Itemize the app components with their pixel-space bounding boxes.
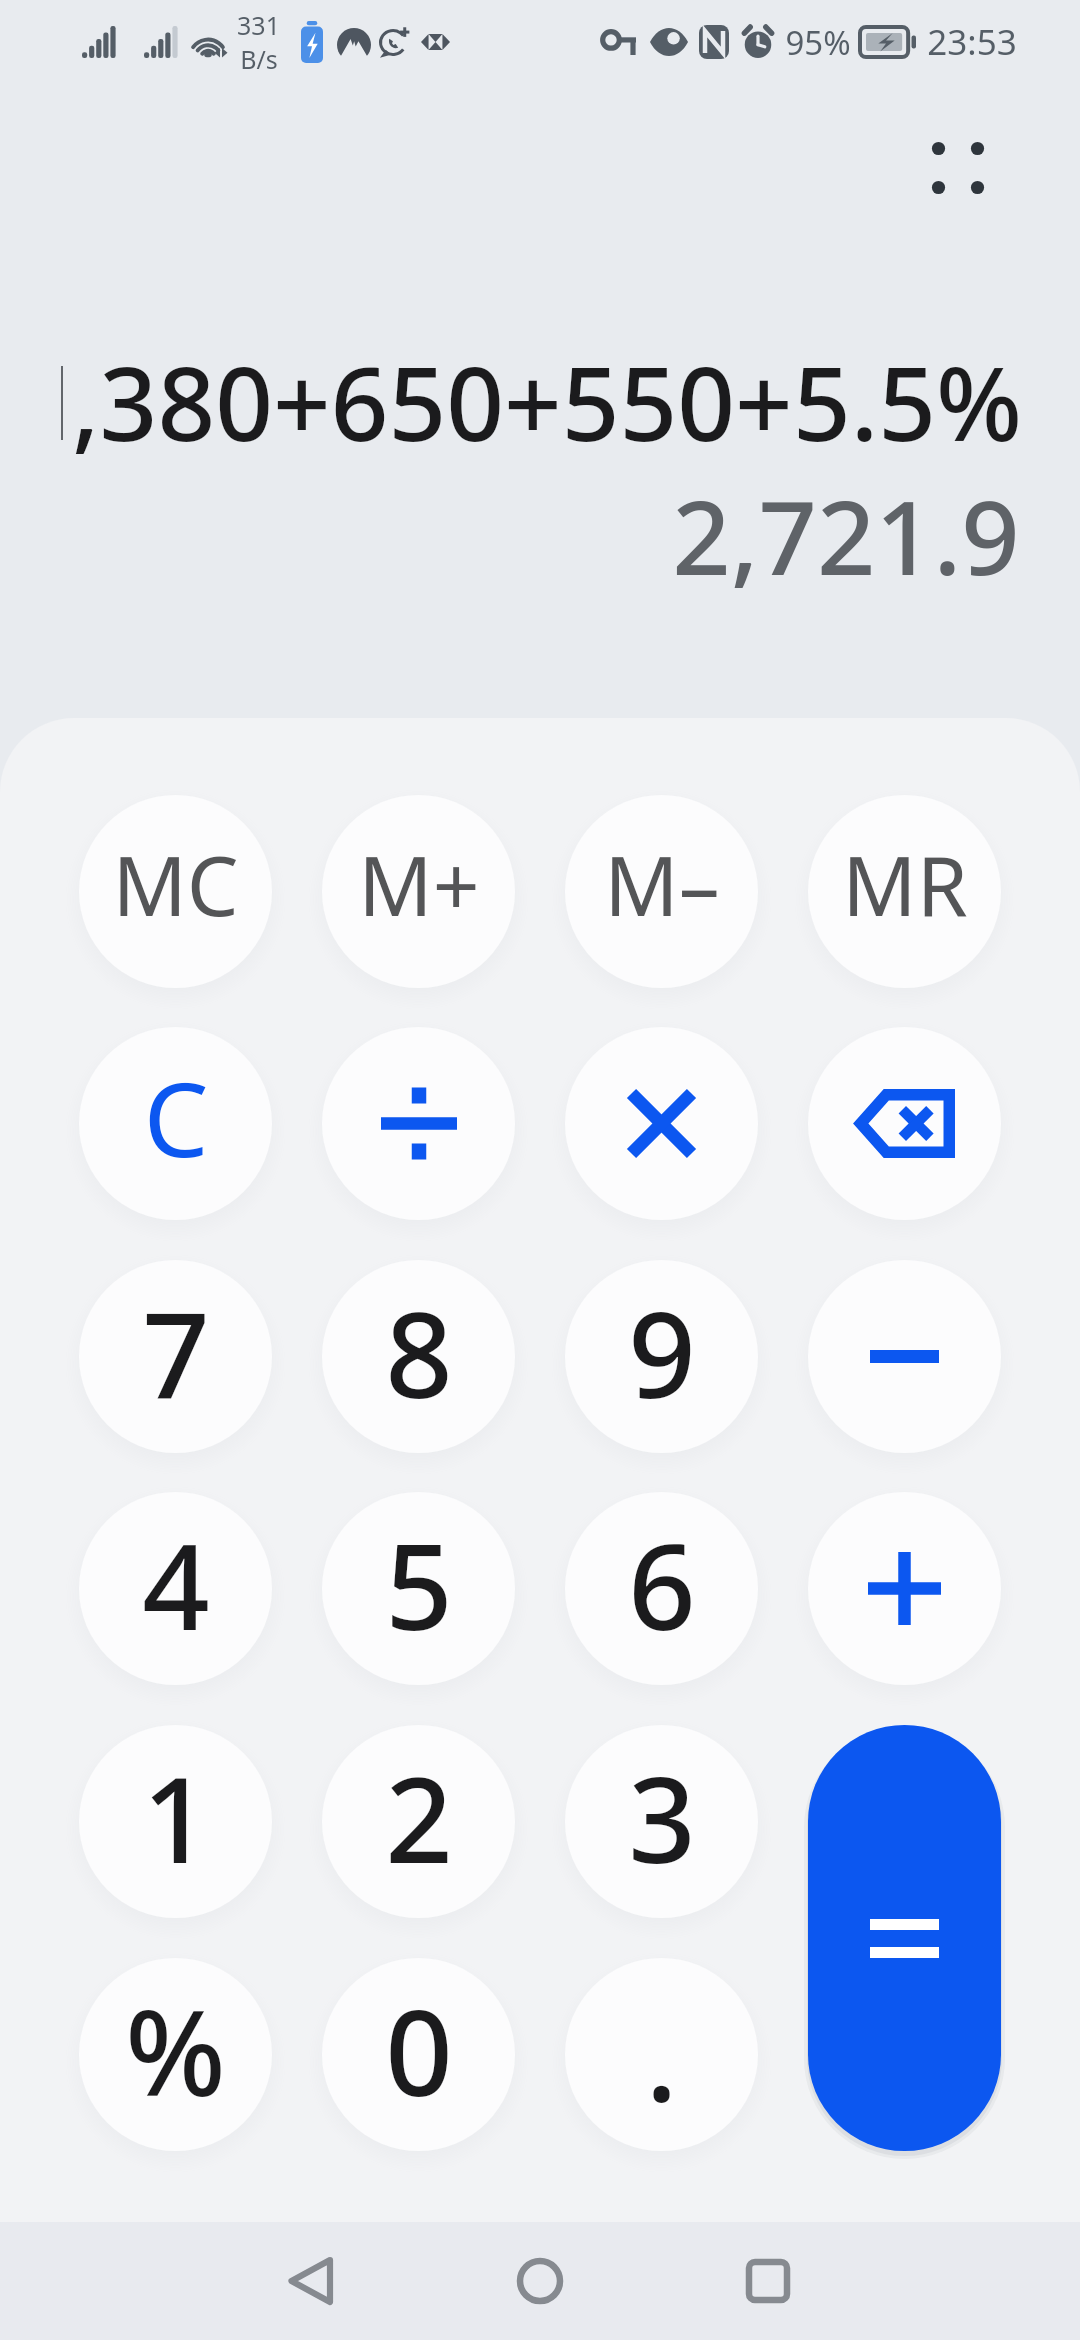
staticText: 23:53	[927, 18, 1017, 66]
staticText: %	[125, 1970, 226, 2131]
button[interactable]: Backspace	[808, 1027, 1001, 1220]
button[interactable]: C	[79, 1027, 272, 1220]
button[interactable]: Equals	[808, 1725, 1001, 2151]
button[interactable]: Recents	[708, 2222, 828, 2340]
button[interactable]: Plus	[808, 1492, 1001, 1685]
staticText: MR	[842, 828, 968, 940]
button[interactable]: 3	[565, 1725, 758, 1918]
button[interactable]: 6	[565, 1492, 758, 1685]
staticText: 6	[628, 1504, 696, 1665]
staticText: 8	[385, 1272, 453, 1433]
button[interactable]: .	[565, 1958, 758, 2151]
staticText: M+	[358, 828, 480, 940]
staticText: 5	[385, 1504, 453, 1665]
staticText: 4	[142, 1504, 210, 1665]
staticText: 331	[237, 8, 280, 42]
button[interactable]: M–	[565, 795, 758, 988]
button[interactable]: Back	[253, 2222, 373, 2340]
button[interactable]: 0	[322, 1958, 515, 2151]
button[interactable]: 1	[79, 1725, 272, 1918]
staticText: 9	[628, 1272, 696, 1433]
button[interactable]: 7	[79, 1260, 272, 1453]
staticText: 0	[385, 1970, 453, 2131]
staticText: 2	[385, 1737, 453, 1898]
staticText: M–	[604, 828, 720, 940]
staticText: 3	[628, 1737, 696, 1898]
staticText: B/s	[240, 42, 278, 76]
staticText: 7	[142, 1272, 210, 1433]
button[interactable]: 9	[565, 1260, 758, 1453]
button[interactable]: Minus	[808, 1260, 1001, 1453]
button[interactable]: MC	[79, 795, 272, 988]
button[interactable]: 2	[322, 1725, 515, 1918]
button[interactable]: 4	[79, 1492, 272, 1685]
staticText: 1	[142, 1737, 210, 1898]
button[interactable]: 8	[322, 1260, 515, 1453]
button[interactable]: MR	[808, 795, 1001, 988]
button[interactable]: More options	[902, 112, 1013, 223]
staticText: ,380+650+550+5.5%	[72, 333, 1022, 471]
staticText: 95%	[785, 20, 851, 65]
button[interactable]: M+	[322, 795, 515, 988]
button[interactable]: 5	[322, 1492, 515, 1685]
staticText: 2,721.9	[672, 466, 1020, 605]
button[interactable]: Home	[480, 2222, 600, 2340]
button[interactable]: %	[79, 1958, 272, 2151]
staticText: .	[645, 1975, 678, 2136]
staticText: MC	[112, 828, 239, 940]
button[interactable]: Multiply	[565, 1027, 758, 1220]
button[interactable]: Divide	[322, 1027, 515, 1220]
staticText: C	[143, 1047, 209, 1187]
